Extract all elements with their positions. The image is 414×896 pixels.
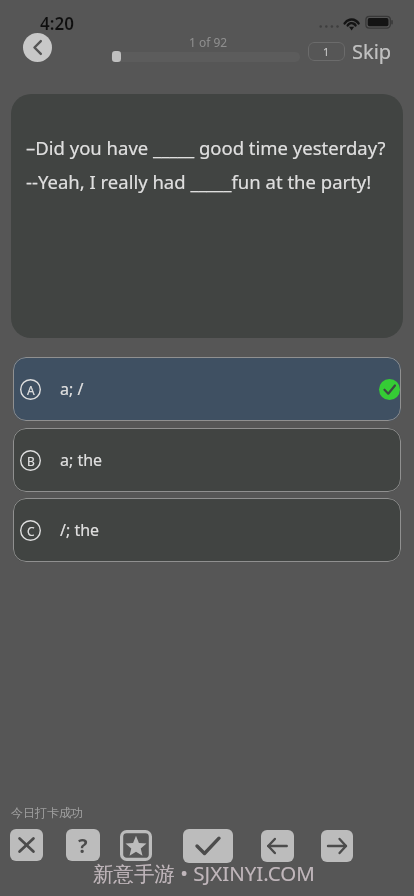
staticText: B: [27, 453, 35, 469]
button[interactable]: Next: [321, 830, 353, 862]
button[interactable]: 1: [308, 42, 345, 61]
button[interactable]: Back: [23, 33, 52, 62]
staticText: –Did you have _____ good time yesterday?: [26, 135, 386, 160]
staticText: --Yeah, I really had _____fun at the par…: [26, 169, 372, 194]
staticText: Skip: [352, 38, 392, 65]
staticText: 新意手游 • SJXINYI.COM: [93, 859, 315, 887]
staticText: /; the: [60, 519, 100, 541]
staticText: 今日打卡成功: [11, 805, 83, 820]
staticText: 4:20: [40, 12, 74, 35]
staticText: 1: [323, 44, 330, 59]
button[interactable]: Skip: [352, 38, 392, 65]
button[interactable]: Favorite: [120, 830, 152, 861]
button[interactable]: Help: [66, 829, 100, 861]
button[interactable]: Previous: [261, 830, 294, 862]
staticText: ?: [78, 832, 88, 859]
button[interactable]: C: [13, 498, 401, 562]
staticText: a; /: [60, 378, 84, 400]
button[interactable]: B: [13, 428, 401, 492]
staticText: A: [27, 382, 35, 398]
staticText: C: [27, 523, 35, 539]
staticText: a; the: [60, 449, 103, 471]
button[interactable]: Confirm: [183, 829, 233, 863]
button[interactable]: Close: [10, 829, 43, 861]
staticText: 1 of 92: [189, 34, 228, 50]
button[interactable]: A: [13, 357, 401, 421]
